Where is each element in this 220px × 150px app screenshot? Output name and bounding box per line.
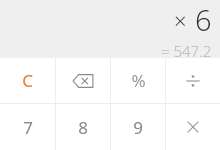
- button[interactable]: Multiply: [166, 104, 220, 150]
- staticText: 6: [195, 0, 212, 39]
- button[interactable]: Backspace: [56, 58, 110, 103]
- staticText: 9: [133, 116, 143, 139]
- button[interactable]: %: [111, 58, 165, 103]
- button[interactable]: C: [0, 58, 55, 103]
- staticText: 7: [23, 116, 33, 139]
- button[interactable]: 9: [111, 104, 165, 150]
- button[interactable]: Divide: [166, 58, 220, 103]
- staticText: ×: [174, 5, 187, 35]
- staticText: C: [22, 69, 33, 92]
- staticText: %: [131, 69, 146, 92]
- button[interactable]: 8: [56, 104, 110, 150]
- staticText: 8: [78, 116, 88, 139]
- button[interactable]: 7: [0, 104, 55, 150]
- staticText: = 547.2: [161, 41, 212, 58]
